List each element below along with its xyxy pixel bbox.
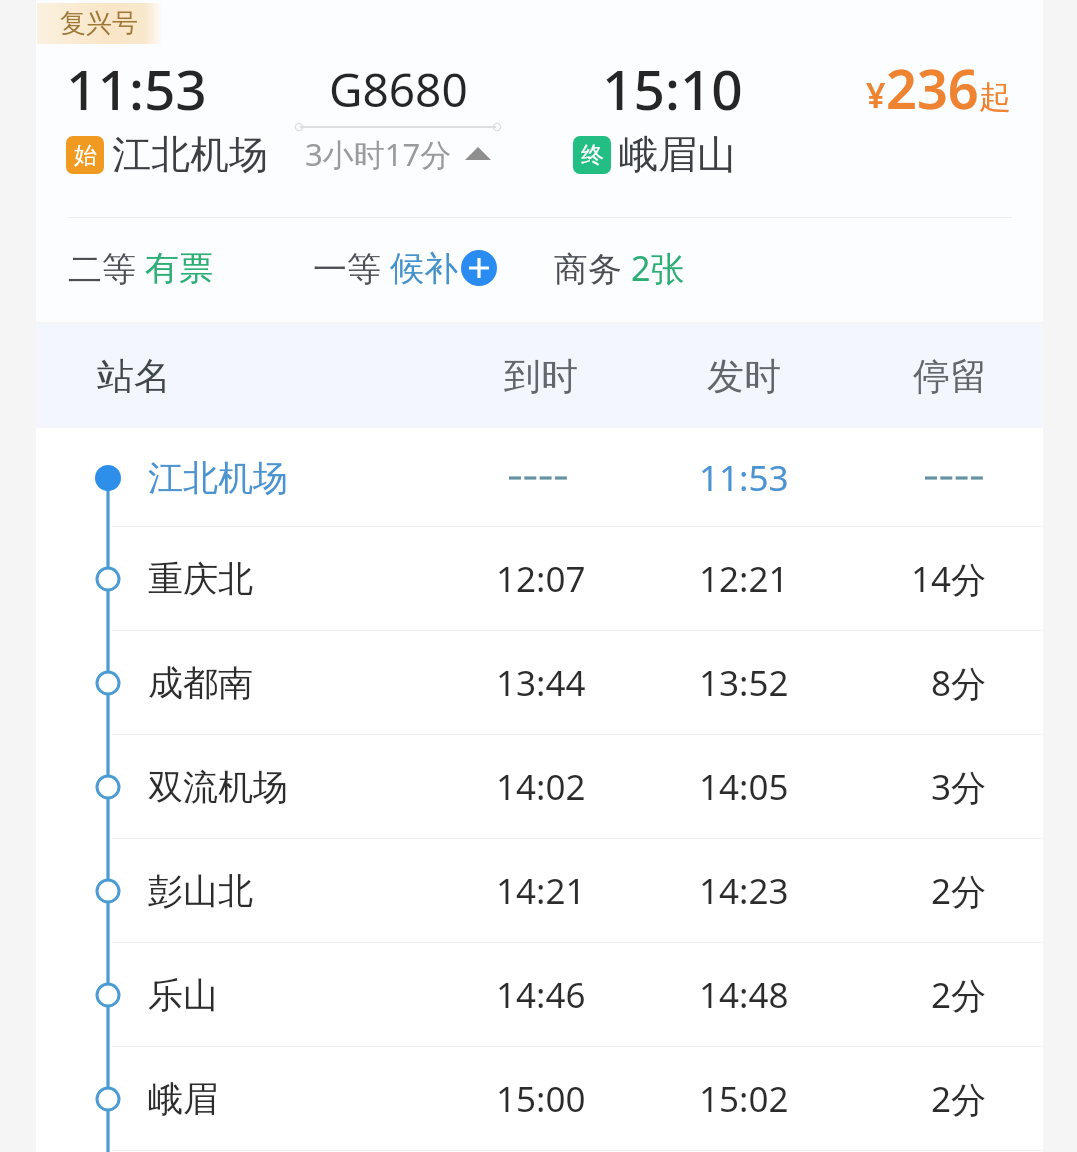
button[interactable]: 商务: [554, 245, 685, 291]
staticText: 江北机场: [148, 456, 288, 500]
staticText: 14:21: [496, 867, 586, 915]
staticText: 一等: [313, 245, 390, 291]
staticText: 停留: [913, 353, 987, 400]
staticText: 11:53: [66, 51, 207, 126]
staticText: 14:46: [496, 971, 586, 1019]
staticText: 二等: [68, 245, 145, 291]
staticText: 14:05: [699, 763, 789, 811]
staticText: 13:44: [496, 659, 586, 707]
staticText: 2分: [931, 1075, 987, 1123]
staticText: 彭山北: [148, 869, 253, 913]
button[interactable]: 江北机场: [36, 428, 1043, 527]
staticText: 终: [581, 141, 604, 170]
staticText: 3分: [931, 763, 987, 811]
staticText: G8680: [329, 58, 468, 121]
staticText: 12:21: [699, 555, 789, 603]
staticText: ¥: [866, 72, 886, 118]
staticText: 商务: [554, 245, 631, 291]
staticText: 11:53: [699, 454, 789, 502]
staticText: 有票: [145, 247, 213, 290]
button[interactable]: 二等: [68, 245, 213, 291]
staticText: 站名: [97, 353, 171, 400]
staticText: 13:52: [699, 659, 789, 707]
staticText: 到时: [504, 353, 578, 400]
button[interactable]: 乐山: [36, 943, 1043, 1047]
staticText: 2分: [931, 867, 987, 915]
staticText: 成都南: [148, 661, 253, 705]
button[interactable]: 彭山北: [36, 839, 1043, 943]
button[interactable]: 成都南: [36, 631, 1043, 735]
staticText: 重庆北: [148, 557, 253, 601]
staticText: 2分: [931, 971, 987, 1019]
button[interactable]: 一等: [313, 245, 497, 291]
staticText: 236: [886, 51, 979, 125]
staticText: 8分: [931, 659, 987, 707]
staticText: 乐山: [148, 973, 218, 1017]
staticText: 3小时17分: [305, 133, 452, 175]
button[interactable]: ¥: [866, 51, 1011, 125]
staticText: 15:02: [699, 1075, 789, 1123]
staticText: 候补: [390, 247, 458, 290]
button[interactable]: 复兴号: [36, 0, 1043, 322]
staticText: 江北机场: [112, 130, 268, 179]
staticText: 14:23: [699, 867, 789, 915]
button[interactable]: 重庆北: [36, 527, 1043, 631]
staticText: 14:02: [496, 763, 586, 811]
button[interactable]: 峨眉: [36, 1047, 1043, 1151]
other: Add waitlist: [461, 250, 497, 286]
staticText: 14分: [911, 555, 987, 603]
staticText: 15:00: [496, 1075, 586, 1123]
staticText: 12:07: [496, 555, 586, 603]
button[interactable]: 双流机场: [36, 735, 1043, 839]
staticText: 始: [74, 141, 97, 170]
staticText: 峨眉: [148, 1077, 218, 1121]
staticText: 双流机场: [148, 765, 288, 809]
staticText: 14:48: [699, 971, 789, 1019]
staticText: 发时: [707, 353, 781, 400]
staticText: 复兴号: [60, 7, 138, 40]
staticText: 15:10: [602, 51, 743, 126]
staticText: 2张: [631, 245, 685, 291]
staticText: 起: [979, 77, 1011, 117]
staticText: 峨眉山: [619, 130, 736, 179]
